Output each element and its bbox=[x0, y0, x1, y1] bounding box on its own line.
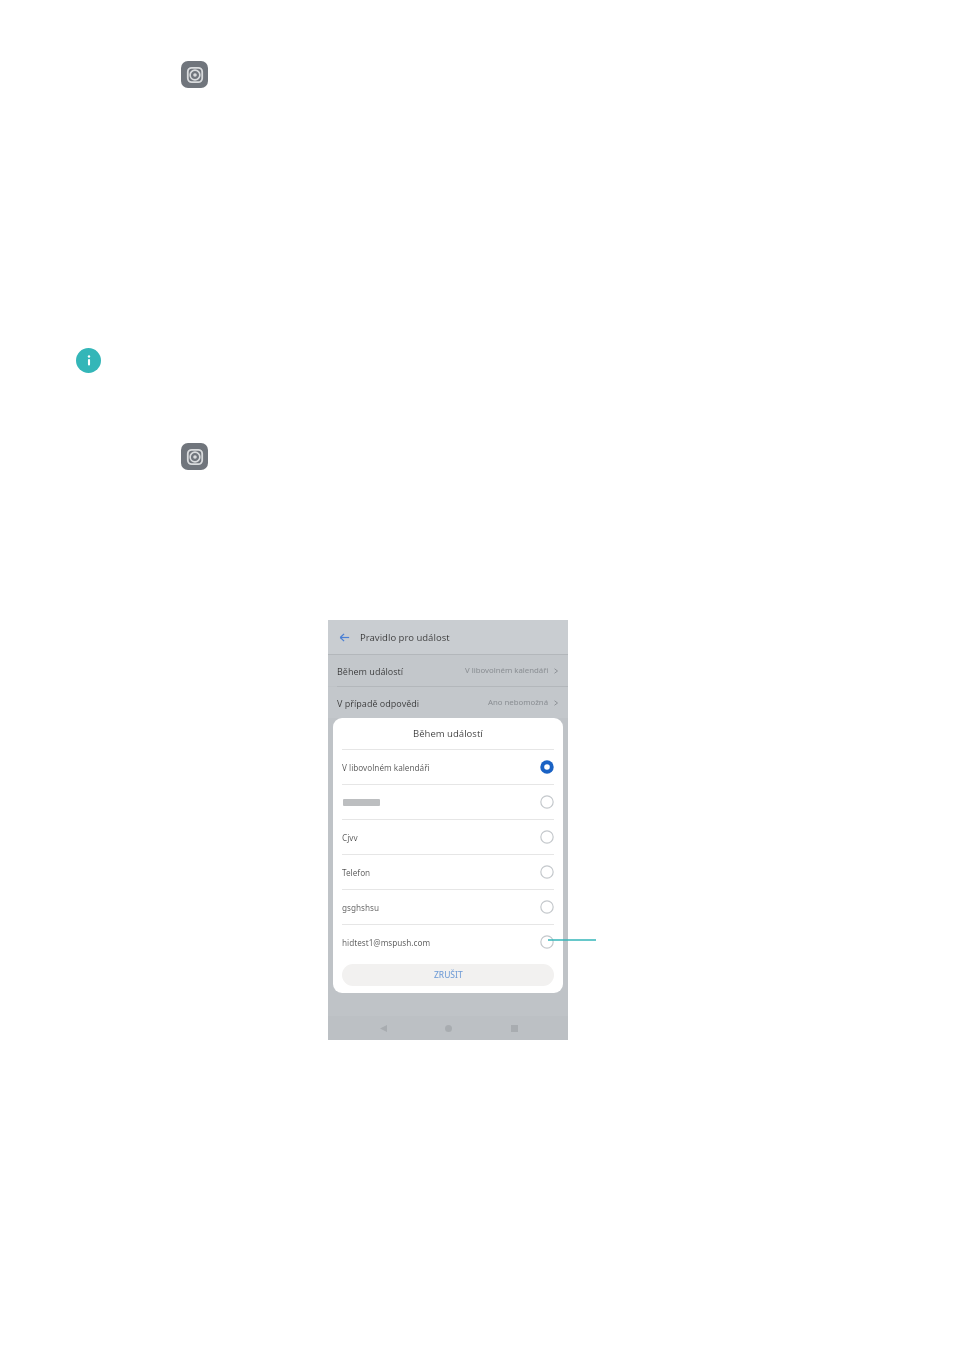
button[interactable]: Back bbox=[328, 620, 568, 654]
button[interactable]: Recents bbox=[503, 1017, 525, 1039]
button[interactable]: Během událostí bbox=[337, 655, 559, 686]
button[interactable]: hidtest1@mspush.com bbox=[333, 925, 563, 959]
button[interactable]: Home bbox=[437, 1017, 459, 1039]
staticText: ZRUŠIT bbox=[434, 969, 463, 981]
button[interactable]: Back bbox=[337, 630, 351, 644]
staticText: Pravidlo pro událost bbox=[360, 631, 450, 644]
staticText: Ano nebomožná bbox=[488, 697, 549, 708]
button[interactable]: V případě odpovědi bbox=[337, 687, 559, 718]
button[interactable]: gsghshsu bbox=[333, 890, 563, 925]
button[interactable]: Telefon bbox=[333, 855, 563, 890]
button[interactable]: App icon bbox=[181, 443, 208, 470]
button[interactable] bbox=[333, 785, 563, 820]
staticText: Během událostí bbox=[413, 727, 483, 740]
button[interactable]: Back bbox=[372, 1017, 394, 1039]
button[interactable]: ZRUŠIT bbox=[342, 964, 554, 986]
button[interactable]: Information bbox=[76, 348, 101, 373]
staticText: Během událostí bbox=[337, 665, 404, 677]
staticText: Cjvv bbox=[342, 832, 358, 843]
staticText: V případě odpovědi bbox=[337, 697, 420, 709]
button[interactable]: V libovolném kalendáři bbox=[333, 750, 563, 785]
staticText: Telefon bbox=[342, 867, 371, 878]
button[interactable]: Cjvv bbox=[333, 820, 563, 855]
button[interactable]: App icon bbox=[181, 61, 208, 88]
staticText: gsghshsu bbox=[342, 902, 380, 913]
staticText: V libovolném kalendáři bbox=[465, 665, 549, 676]
staticText: V libovolném kalendáři bbox=[342, 762, 430, 773]
staticText: hidtest1@mspush.com bbox=[342, 937, 431, 948]
